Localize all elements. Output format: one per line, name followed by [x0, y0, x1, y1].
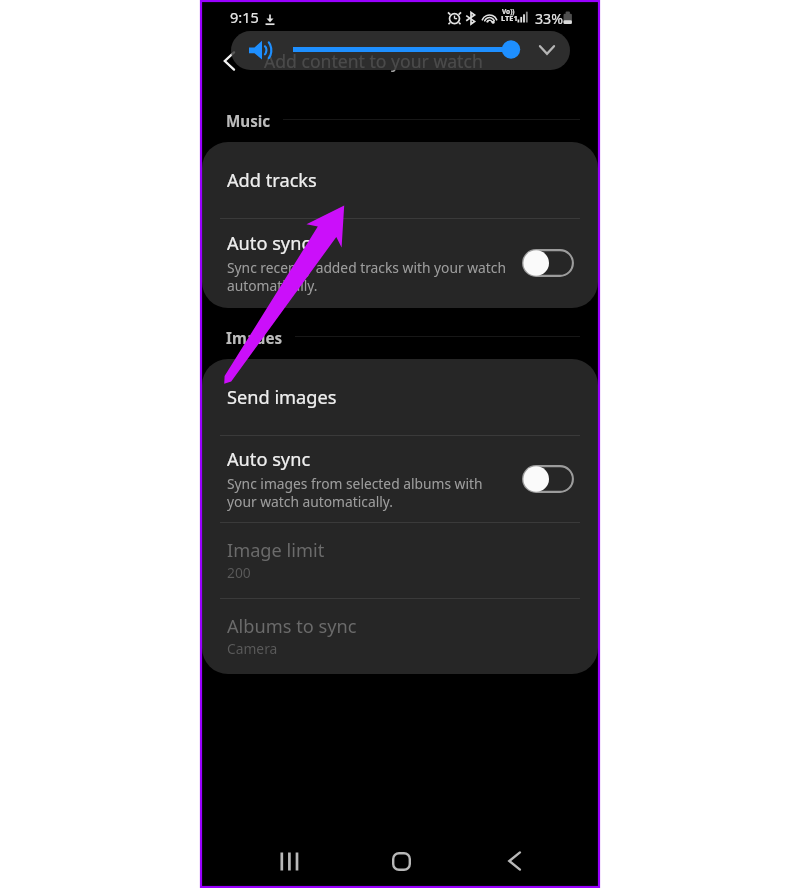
button[interactable]: Add tracks	[202, 142, 598, 218]
button[interactable]: Recents	[261, 834, 317, 888]
button[interactable]: Send images	[202, 359, 598, 435]
staticText: Sync recently added tracks with your wat…	[227, 258, 506, 295]
staticText: Add tracks	[227, 168, 317, 193]
staticText: Music	[226, 111, 271, 127]
staticText: Vo))	[502, 7, 515, 16]
button[interactable]: Image limit	[202, 522, 598, 598]
button[interactable]: Auto sync	[202, 435, 598, 522]
staticText: Add content to your watch	[264, 49, 483, 73]
staticText: Albums to sync	[227, 614, 357, 639]
button[interactable]: Auto sync switch	[522, 465, 574, 493]
staticText: Sync images from selected albums with yo…	[227, 474, 483, 511]
other: Navigate up	[222, 51, 236, 71]
staticText: Auto sync	[227, 447, 311, 472]
button[interactable]: Home	[373, 834, 429, 888]
staticText: LTE1	[501, 13, 518, 23]
button[interactable]: Back	[486, 834, 542, 888]
staticText: Send images	[227, 385, 337, 410]
button[interactable]: Auto sync	[202, 218, 598, 308]
staticText: Image limit	[227, 538, 325, 563]
staticText: 9:15	[230, 7, 259, 27]
button[interactable]: Auto sync switch	[522, 249, 574, 277]
button[interactable]: Albums to sync	[202, 598, 598, 674]
staticText: 33%	[535, 9, 564, 28]
staticText: Auto sync	[227, 231, 311, 256]
button[interactable]: Expand volume panel	[514, 31, 570, 70]
staticText: 200	[227, 563, 251, 582]
staticText: Images	[226, 328, 283, 344]
staticText: Camera	[227, 639, 278, 658]
